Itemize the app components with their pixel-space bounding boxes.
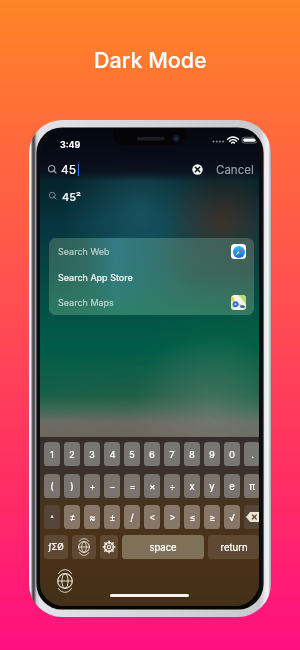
staticText: Dark Mode: [94, 47, 207, 73]
button[interactable]: e: [224, 474, 240, 498]
button[interactable]: Clear search: [192, 164, 203, 175]
button[interactable]: ˄: [44, 505, 60, 529]
staticText: 4: [109, 449, 116, 460]
button[interactable]: 1: [44, 442, 60, 466]
button[interactable]: √: [224, 505, 240, 529]
staticText: 1: [50, 449, 54, 460]
button[interactable]: /: [124, 505, 140, 529]
button[interactable]: Keyboard settings: [100, 535, 118, 559]
staticText: ≤: [189, 512, 196, 523]
button[interactable]: <: [144, 505, 160, 529]
button[interactable]: 6: [144, 442, 160, 466]
button[interactable]: −: [104, 474, 120, 498]
button[interactable]: 0: [224, 442, 240, 466]
button[interactable]: 9: [204, 442, 220, 466]
staticText: 5: [129, 449, 135, 460]
staticText: .: [251, 449, 254, 460]
button[interactable]: ≈: [84, 505, 100, 529]
button[interactable]: 2: [64, 442, 80, 466]
button[interactable]: 8: [184, 442, 200, 466]
staticText: ±: [109, 512, 116, 523]
button[interactable]: .: [244, 442, 259, 466]
button[interactable]: ≥: [204, 505, 220, 529]
staticText: ˄: [50, 513, 54, 521]
staticText: x: [189, 481, 195, 492]
staticText: (: [50, 481, 54, 492]
staticText: ≈: [89, 512, 96, 523]
staticText: ×: [149, 481, 156, 492]
button[interactable]: 3: [84, 442, 100, 466]
staticText: 7: [169, 449, 175, 460]
button[interactable]: ): [64, 474, 80, 498]
staticText: 45: [61, 162, 77, 177]
staticText: =: [129, 481, 136, 492]
button[interactable]: Search Web: [49, 238, 254, 264]
button[interactable]: Search App Store: [49, 264, 254, 290]
staticText: 3: [89, 449, 95, 460]
button[interactable]: =: [124, 474, 140, 498]
staticText: √: [229, 512, 235, 523]
staticText: >: [169, 512, 176, 523]
button[interactable]: π: [244, 474, 259, 498]
button[interactable]: ÷: [164, 474, 180, 498]
staticText: 45²: [62, 190, 81, 203]
button[interactable]: 7: [164, 442, 180, 466]
staticText: Search Web: [58, 246, 110, 257]
button[interactable]: ±: [104, 505, 120, 529]
staticText: ƒΣØ: [48, 542, 64, 552]
staticText: e: [229, 481, 235, 492]
staticText: 8: [189, 449, 195, 460]
button[interactable]: space: [122, 535, 204, 559]
staticText: <: [149, 512, 156, 523]
button[interactable]: 5: [124, 442, 140, 466]
staticText: Search Maps: [58, 297, 114, 308]
button[interactable]: Next keyboard: [72, 535, 96, 559]
button[interactable]: ≠: [64, 505, 80, 529]
staticText: 0: [229, 449, 235, 460]
staticText: ): [70, 481, 74, 492]
button[interactable]: ≤: [184, 505, 200, 529]
staticText: 2: [69, 449, 75, 460]
button[interactable]: x: [184, 474, 200, 498]
button[interactable]: Backspace: [244, 505, 259, 529]
staticText: ≠: [69, 512, 76, 523]
button[interactable]: Search Maps: [49, 290, 254, 315]
staticText: Search App Store: [58, 272, 133, 283]
staticText: space: [149, 542, 177, 553]
staticText: return: [220, 542, 248, 553]
staticText: 6: [149, 449, 155, 460]
button[interactable]: Cancel: [216, 163, 254, 177]
button[interactable]: (: [44, 474, 60, 498]
staticText: 3:49: [60, 139, 81, 150]
button[interactable]: return: [208, 535, 259, 559]
staticText: ≥: [209, 512, 216, 523]
button[interactable]: 4: [104, 442, 120, 466]
staticText: /: [130, 512, 134, 523]
staticText: 9: [209, 449, 215, 460]
staticText: y: [209, 481, 215, 492]
button[interactable]: ƒΣØ: [44, 535, 68, 559]
staticText: +: [89, 481, 96, 492]
button[interactable]: y: [204, 474, 220, 498]
staticText: −: [109, 481, 116, 492]
button[interactable]: Switch keyboard: [57, 573, 73, 589]
staticText: π: [249, 481, 255, 492]
button[interactable]: 45: [40, 157, 259, 182]
button[interactable]: >: [164, 505, 180, 529]
button[interactable]: ×: [144, 474, 160, 498]
button[interactable]: 45²: [40, 184, 259, 208]
button[interactable]: +: [84, 474, 100, 498]
staticText: ÷: [169, 481, 176, 492]
